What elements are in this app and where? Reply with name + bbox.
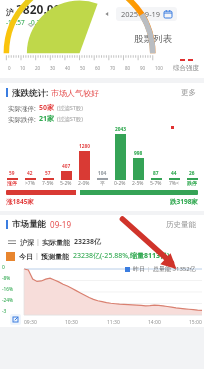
staticText: 0: [2, 264, 5, 271]
staticText: |: [147, 265, 151, 273]
staticText: 跌停: [187, 180, 197, 186]
staticText: 59: [9, 170, 15, 177]
staticText: 综合强度: [173, 64, 199, 72]
staticText: >7%: [25, 180, 35, 187]
staticText: 预测量能: [41, 252, 69, 261]
staticText: 50家: [39, 103, 55, 113]
staticText: 沪: [6, 7, 14, 17]
staticText: 实际涨停:: [8, 104, 36, 113]
staticText: 20: [35, 65, 41, 71]
staticText: 7%<: [169, 180, 179, 187]
button[interactable]: Previous day: [103, 10, 111, 18]
staticText: 10: [20, 65, 26, 71]
staticText: 26: [189, 170, 195, 177]
staticText: 1280: [79, 143, 90, 150]
staticText: 平: [100, 180, 105, 186]
button[interactable]: 历史量能: [164, 218, 198, 231]
staticText: 实际跌停:: [8, 115, 36, 124]
staticText: 涨停: [7, 180, 17, 186]
staticText: -3: [2, 308, 7, 315]
staticText: 23238亿(-25.88%,: [73, 251, 130, 261]
staticText: 2025-09-19: [121, 9, 161, 19]
staticText: 42: [27, 170, 33, 177]
staticText: 沪深: [20, 238, 34, 247]
staticText: 涨跌统计:: [12, 87, 49, 99]
staticText: 21家: [39, 114, 55, 124]
staticText: 5-2%: [60, 180, 72, 187]
staticText: 7-5%: [42, 180, 54, 187]
staticText: 缩量8113亿): [130, 251, 170, 261]
staticText: |: [35, 251, 39, 261]
staticText: -16%: [2, 286, 14, 293]
staticText: 跌3198家: [170, 197, 198, 206]
staticText: 15:00: [189, 319, 202, 326]
staticText: 2-0%: [78, 180, 90, 187]
button[interactable]: 2025-09-19: [116, 7, 177, 21]
staticText: 100: [155, 65, 163, 71]
staticText: 70: [110, 65, 116, 71]
staticText: 市场人气较好: [51, 88, 99, 98]
staticText: 50: [80, 65, 86, 71]
staticText: 44: [171, 170, 177, 177]
staticText: 998: [134, 150, 143, 157]
button[interactable]: 数据分析: [0, 28, 102, 50]
staticText: 历史量能: [166, 220, 196, 229]
staticText: 市场量能: [12, 219, 46, 230]
button[interactable]: 更多: [179, 86, 198, 99]
staticText: 90: [140, 65, 146, 71]
staticText: -8%: [2, 275, 11, 282]
staticText: |: [36, 237, 40, 247]
staticText: 更多: [181, 88, 196, 97]
staticText: 40: [65, 65, 71, 71]
staticText: 407: [62, 163, 71, 170]
staticText: 2-5%: [132, 180, 144, 187]
staticText: 30: [50, 65, 56, 71]
staticText: 14:00: [148, 319, 161, 326]
button[interactable]: Fullscreen: [10, 314, 21, 325]
staticText: 涨1845家: [6, 197, 34, 206]
staticText: 2043: [115, 126, 126, 133]
staticText: 实际量能: [42, 238, 70, 247]
staticText: 87: [153, 170, 159, 177]
staticText: (过滤ST股): [57, 115, 83, 123]
staticText: 104: [98, 170, 107, 177]
button[interactable]: Expand: [26, 23, 36, 28]
staticText: 11:30: [107, 319, 120, 326]
staticText: 80: [125, 65, 131, 71]
button[interactable]: 股票列表: [102, 28, 204, 50]
staticText: 0: [8, 65, 11, 71]
staticText: -24%: [2, 297, 14, 304]
staticText: -11.57: [6, 18, 25, 27]
staticText: 3820.09: [16, 1, 61, 17]
staticText: 10:30: [65, 319, 78, 326]
staticText: 57: [45, 170, 51, 177]
staticText: 23238亿: [74, 237, 102, 247]
staticText: 今日: [19, 252, 33, 261]
staticText: 0-2%: [114, 180, 126, 187]
staticText: 60: [95, 65, 101, 71]
staticText: 总量能 31352亿: [153, 265, 196, 273]
staticText: 昨日: [133, 265, 145, 273]
staticText: -0.30%: [29, 18, 50, 27]
staticText: 股票列表: [134, 33, 172, 45]
staticText: 5-7%: [150, 180, 162, 187]
staticText: (过滤ST股): [57, 104, 83, 112]
staticText: 09:30: [24, 319, 37, 326]
staticText: 09-19: [48, 219, 71, 230]
